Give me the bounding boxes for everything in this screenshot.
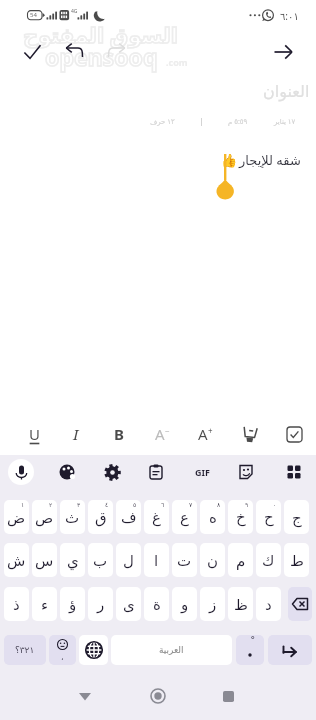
staticText: خ — [236, 509, 246, 526]
staticText: A — [155, 424, 165, 444]
button[interactable]: م — [228, 543, 253, 577]
button[interactable]: ع — [172, 500, 197, 534]
button[interactable]: ؤ — [60, 587, 85, 621]
button[interactable]: ج — [284, 500, 309, 534]
staticText: ف — [121, 509, 137, 526]
staticText: U — [29, 424, 40, 444]
staticText: ظ — [234, 596, 248, 613]
button[interactable]: Home — [136, 672, 180, 720]
staticText: ك — [262, 552, 275, 569]
button[interactable]: Space — [111, 635, 232, 665]
button[interactable]: ا — [144, 543, 169, 577]
button[interactable]: Themes — [53, 458, 81, 486]
staticText: ث — [65, 509, 80, 526]
button[interactable]: س — [32, 543, 57, 577]
button[interactable]: ر — [88, 587, 113, 621]
button[interactable]: ش — [4, 543, 29, 577]
button[interactable]: Decrease text size — [145, 417, 179, 451]
button[interactable]: ة — [144, 587, 169, 621]
button[interactable]: GIF — [188, 458, 216, 486]
button[interactable]: و — [172, 587, 197, 621]
button[interactable]: ق — [88, 500, 113, 534]
staticText: ه — [209, 509, 217, 526]
button[interactable]: Highlighter — [234, 417, 268, 451]
button[interactable]: More — [280, 458, 308, 486]
staticText: س — [35, 552, 54, 569]
staticText: ١٧ يناير — [274, 117, 296, 127]
staticText: B — [114, 424, 124, 444]
staticText: .com — [166, 56, 188, 68]
button[interactable]: ف — [116, 500, 141, 534]
staticText: د — [265, 596, 272, 613]
button[interactable]: Italic — [59, 417, 93, 451]
button[interactable]: ن — [200, 543, 225, 577]
staticText: ؤ — [69, 596, 77, 613]
staticText: ا — [154, 552, 159, 569]
staticText: ب — [93, 552, 108, 569]
button[interactable]: Increase text size — [188, 417, 222, 451]
staticText: A — [198, 424, 208, 444]
button[interactable]: غ — [144, 500, 169, 534]
button[interactable]: ت — [172, 543, 197, 577]
button[interactable]: Checklist — [277, 417, 311, 451]
button[interactable]: Redo — [105, 40, 129, 64]
button[interactable]: ى — [116, 587, 141, 621]
button[interactable]: Back — [272, 40, 296, 64]
button[interactable]: خ — [228, 500, 253, 534]
staticText: ل — [123, 552, 134, 569]
button[interactable]: Emoji — [49, 635, 76, 665]
button[interactable]: ث — [60, 500, 85, 534]
staticText: ٦ — [161, 501, 165, 508]
button[interactable]: ل — [116, 543, 141, 577]
staticText: ط — [290, 552, 304, 569]
button[interactable]: Bold — [102, 417, 136, 451]
staticText: ص — [35, 509, 54, 526]
staticText: م — [236, 552, 246, 569]
button[interactable]: ي — [60, 543, 85, 577]
button[interactable]: ء — [32, 587, 57, 621]
staticText: العربية — [159, 645, 184, 655]
button[interactable]: Back — [63, 672, 107, 720]
button[interactable]: ذ — [4, 587, 29, 621]
staticText: 4G — [71, 8, 78, 15]
button[interactable]: Change language — [79, 635, 108, 665]
staticText: ٩ — [245, 501, 249, 508]
staticText: ٦:٠١ — [280, 9, 299, 23]
button[interactable]: Stickers — [232, 458, 260, 486]
staticText: ٨ — [217, 501, 221, 508]
button[interactable]: Recent apps — [206, 672, 250, 720]
staticText: غ — [152, 509, 161, 526]
staticText: + — [208, 425, 213, 436]
button[interactable]: Voice input — [8, 459, 34, 485]
staticText: ة — [153, 596, 161, 613]
button[interactable]: Underline — [17, 417, 51, 451]
button[interactable]: ز — [200, 587, 225, 621]
button[interactable]: Period — [236, 635, 264, 665]
button[interactable]: ب — [88, 543, 113, 577]
staticText: شقه للإيجار — [239, 151, 301, 169]
button[interactable]: ص — [32, 500, 57, 534]
staticText: opensooq — [45, 41, 158, 72]
staticText: ر — [97, 596, 105, 613]
button[interactable]: Symbols — [4, 635, 46, 665]
staticText: ذ — [13, 596, 20, 613]
staticText: ٥ — [133, 501, 137, 508]
button[interactable]: Settings — [98, 458, 126, 486]
button[interactable]: Save note — [18, 38, 46, 66]
button[interactable]: Backspace — [288, 587, 312, 621]
button[interactable]: ظ — [228, 587, 253, 621]
button[interactable]: ض — [4, 500, 29, 534]
staticText: ض — [7, 509, 26, 526]
button[interactable]: ط — [284, 543, 309, 577]
button[interactable]: Clipboard — [142, 458, 170, 486]
button[interactable]: ح — [256, 500, 281, 534]
button[interactable]: Undo — [62, 40, 86, 64]
staticText: ، — [61, 653, 64, 662]
button[interactable]: ه — [200, 500, 225, 534]
staticText: I — [73, 424, 79, 444]
button[interactable]: Enter — [268, 635, 312, 665]
staticText: العنوان — [263, 82, 310, 101]
staticText: ش — [7, 552, 26, 569]
button[interactable]: ك — [256, 543, 281, 577]
button[interactable]: د — [256, 587, 281, 621]
